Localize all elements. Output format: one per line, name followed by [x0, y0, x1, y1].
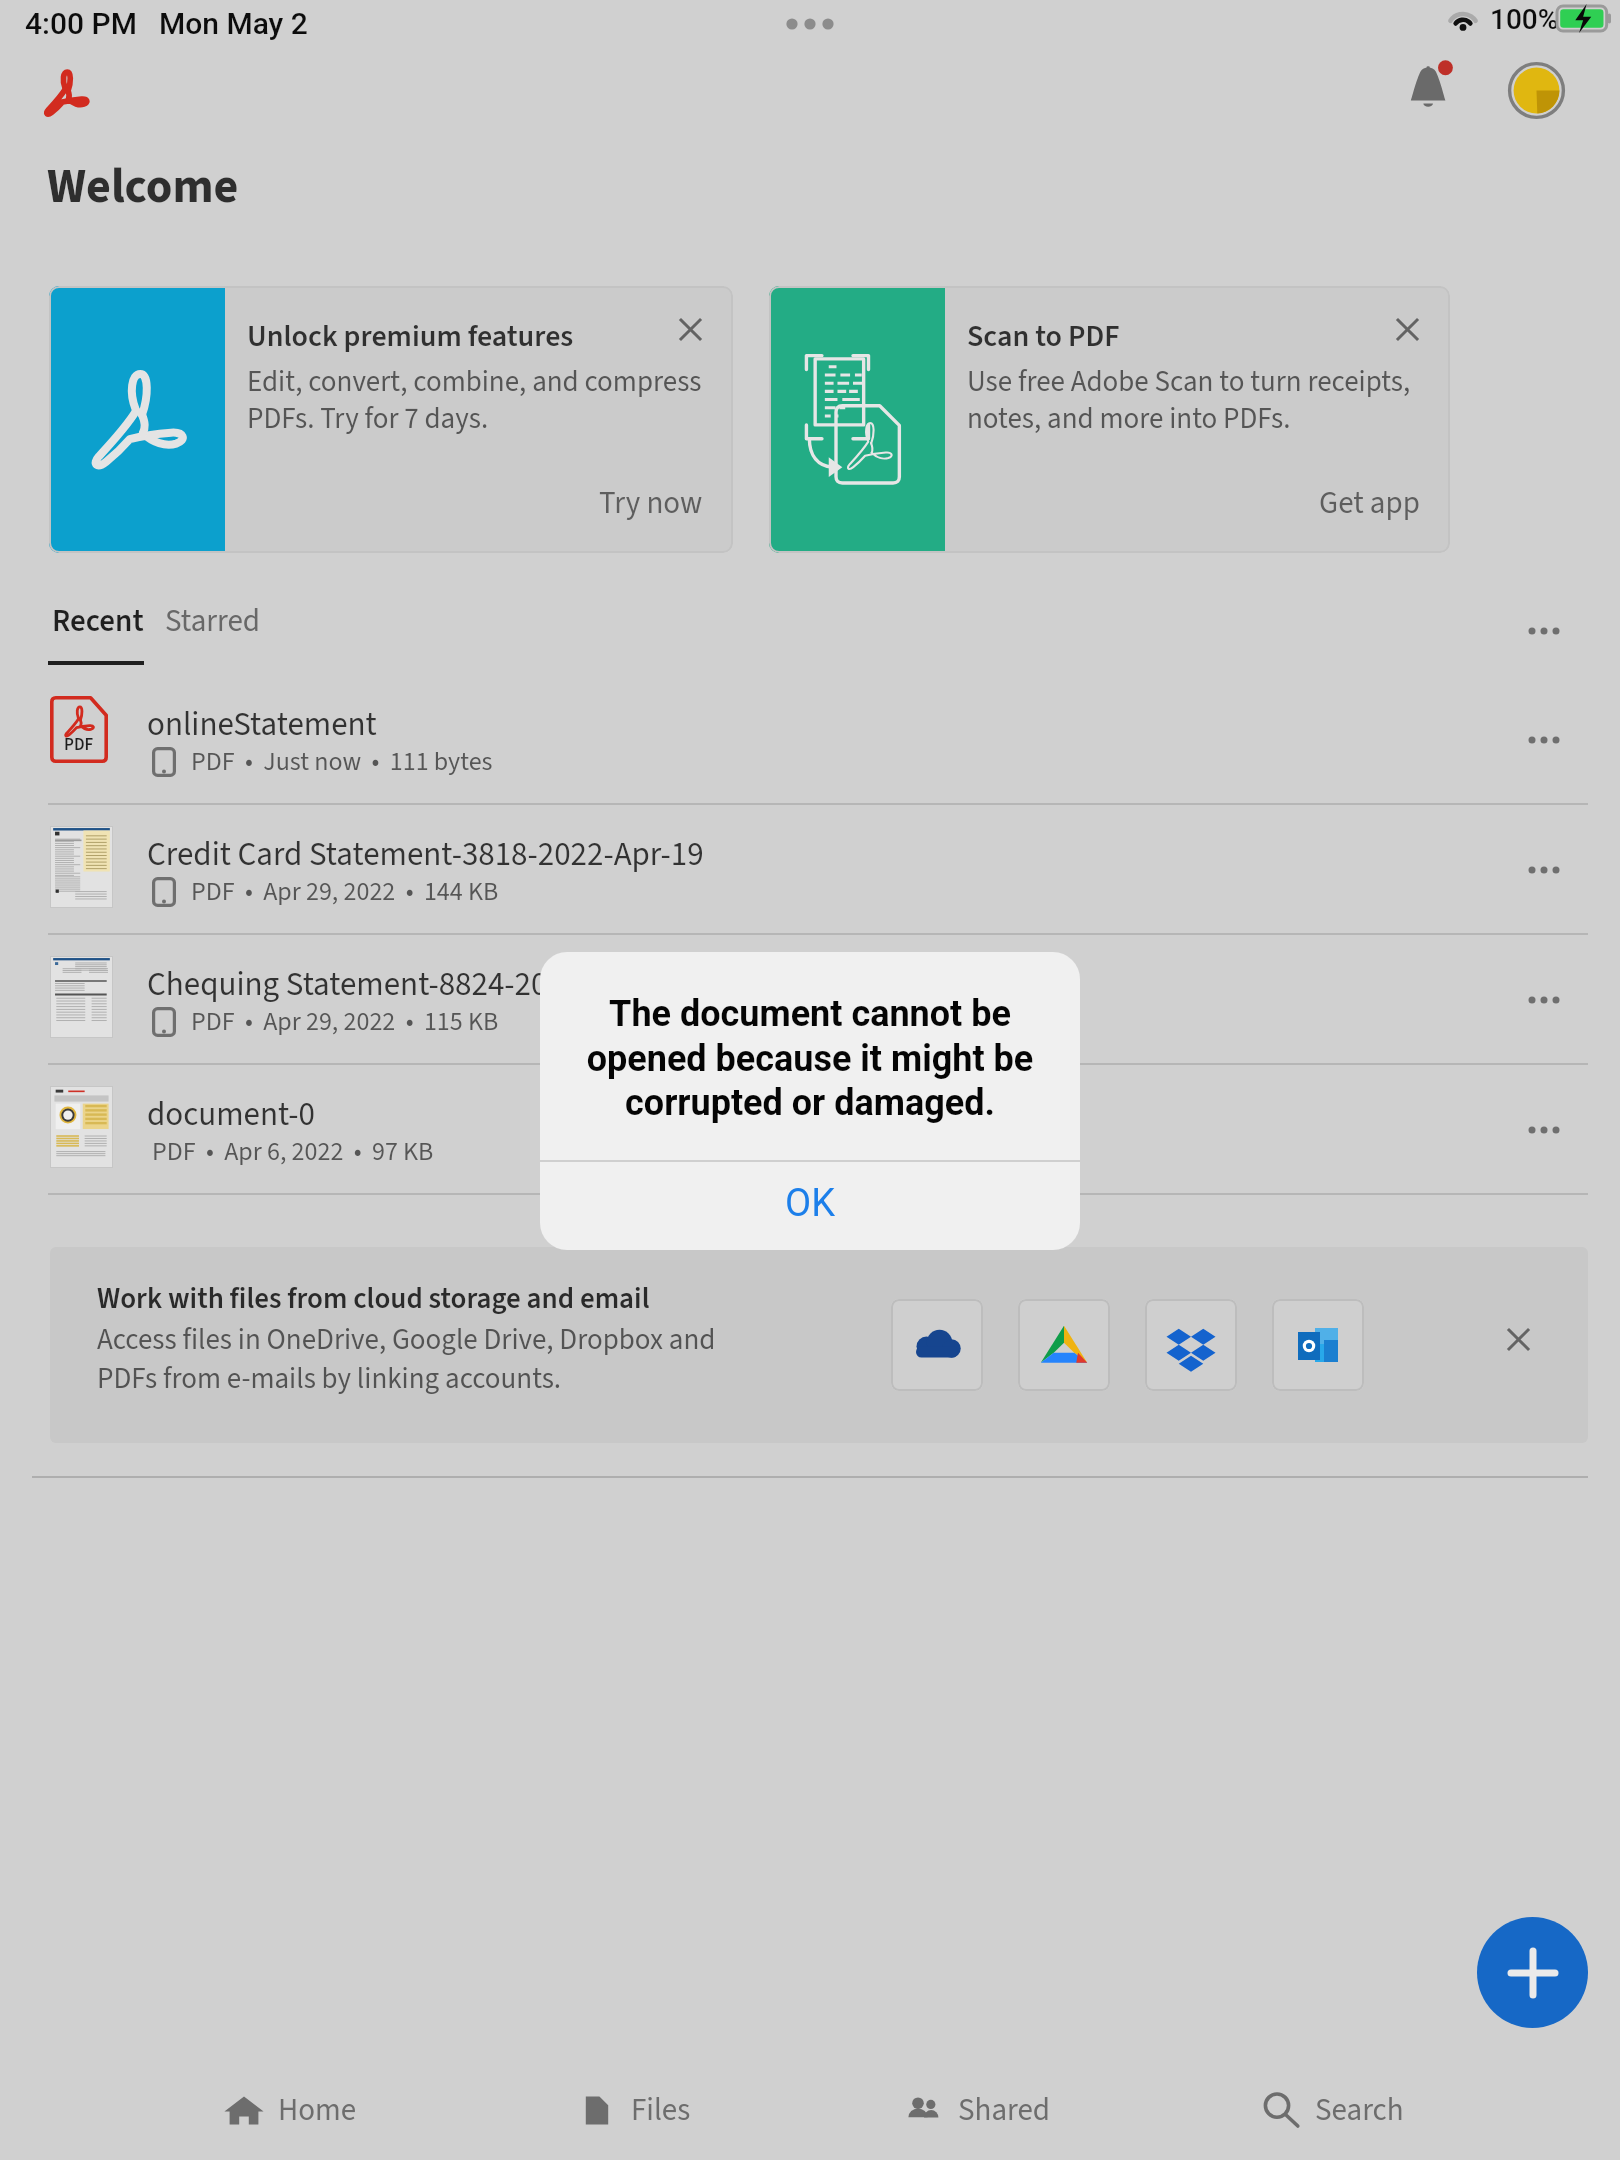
staticText: Scan to PDF	[967, 315, 1120, 358]
button[interactable]: Google Drive	[1018, 1299, 1110, 1391]
staticText: PDF • Just now • 111 bytes	[191, 743, 493, 780]
button[interactable]: Close	[1379, 301, 1435, 357]
staticText: PDF • Apr 29, 2022 • 144 KB	[191, 873, 499, 910]
staticText: Starred	[165, 599, 261, 643]
staticText: PDF • Apr 6, 2022 • 97 KB	[152, 1133, 434, 1170]
staticText: OK	[785, 1181, 835, 1226]
staticText: Try now	[599, 481, 703, 525]
staticText: Files	[631, 2088, 691, 2132]
button[interactable]: Search	[1251, 2076, 1414, 2144]
staticText: Access files in OneDrive, Google Drive, …	[97, 1319, 716, 1400]
staticText: Get app	[1319, 481, 1420, 525]
button[interactable]: Notifications	[1397, 51, 1467, 121]
button[interactable]: Try now	[593, 475, 709, 531]
button[interactable]: Scan to PDF	[769, 286, 1450, 553]
staticText: Shared	[958, 2088, 1051, 2132]
button[interactable]: Get app	[1313, 475, 1426, 531]
button[interactable]: Home	[214, 2076, 367, 2144]
button[interactable]: Create	[1477, 1917, 1588, 2028]
button[interactable]: More options	[1511, 967, 1577, 1033]
staticText: Chequing Statement-8824-2022-Apr-29	[147, 961, 681, 1008]
button[interactable]: Adobe Acrobat	[32, 59, 100, 127]
staticText: PDF • Apr 29, 2022 • 115 KB	[191, 1003, 499, 1040]
button[interactable]: OK	[540, 1162, 1080, 1250]
button[interactable]: Unlock premium features	[49, 286, 733, 553]
staticText: Home	[278, 2088, 357, 2132]
button[interactable]: OneDrive	[891, 1299, 983, 1391]
staticText: The document cannot be opened because it…	[568, 993, 1052, 1124]
staticText: onlineStatement	[147, 701, 377, 748]
staticText: 4:00 PM	[25, 6, 137, 41]
staticText: Recent	[52, 599, 144, 643]
button[interactable]: More options	[1511, 707, 1577, 773]
button[interactable]: More options	[1511, 837, 1577, 903]
staticText: Search	[1315, 2088, 1404, 2132]
staticText: 100%	[1490, 3, 1559, 36]
staticText: Welcome	[47, 153, 239, 221]
button[interactable]: Account	[1504, 58, 1568, 122]
button[interactable]: More options	[1511, 598, 1577, 664]
button[interactable]: More options	[1511, 1097, 1577, 1163]
staticText: Work with files from cloud storage and e…	[97, 1278, 650, 1319]
staticText: PDF	[64, 733, 94, 757]
button[interactable]: Files	[567, 2076, 701, 2144]
button[interactable]: Close	[662, 301, 718, 357]
button[interactable]: Starred	[159, 595, 267, 647]
staticText: Mon May 2	[159, 6, 308, 41]
staticText: Credit Card Statement-3818-2022-Apr-19	[147, 831, 704, 878]
button[interactable]: Recent	[46, 595, 150, 647]
staticText: Use free Adobe Scan to turn receipts, no…	[967, 361, 1411, 439]
button[interactable]: Dismiss	[1490, 1311, 1546, 1367]
staticText: document-0	[147, 1091, 315, 1138]
staticText: Unlock premium features	[247, 315, 574, 358]
button[interactable]: Shared	[894, 2076, 1061, 2144]
staticText: Edit, convert, combine, and compress PDF…	[247, 361, 702, 439]
button[interactable]: Outlook	[1272, 1299, 1364, 1391]
button[interactable]: Dropbox	[1145, 1299, 1237, 1391]
